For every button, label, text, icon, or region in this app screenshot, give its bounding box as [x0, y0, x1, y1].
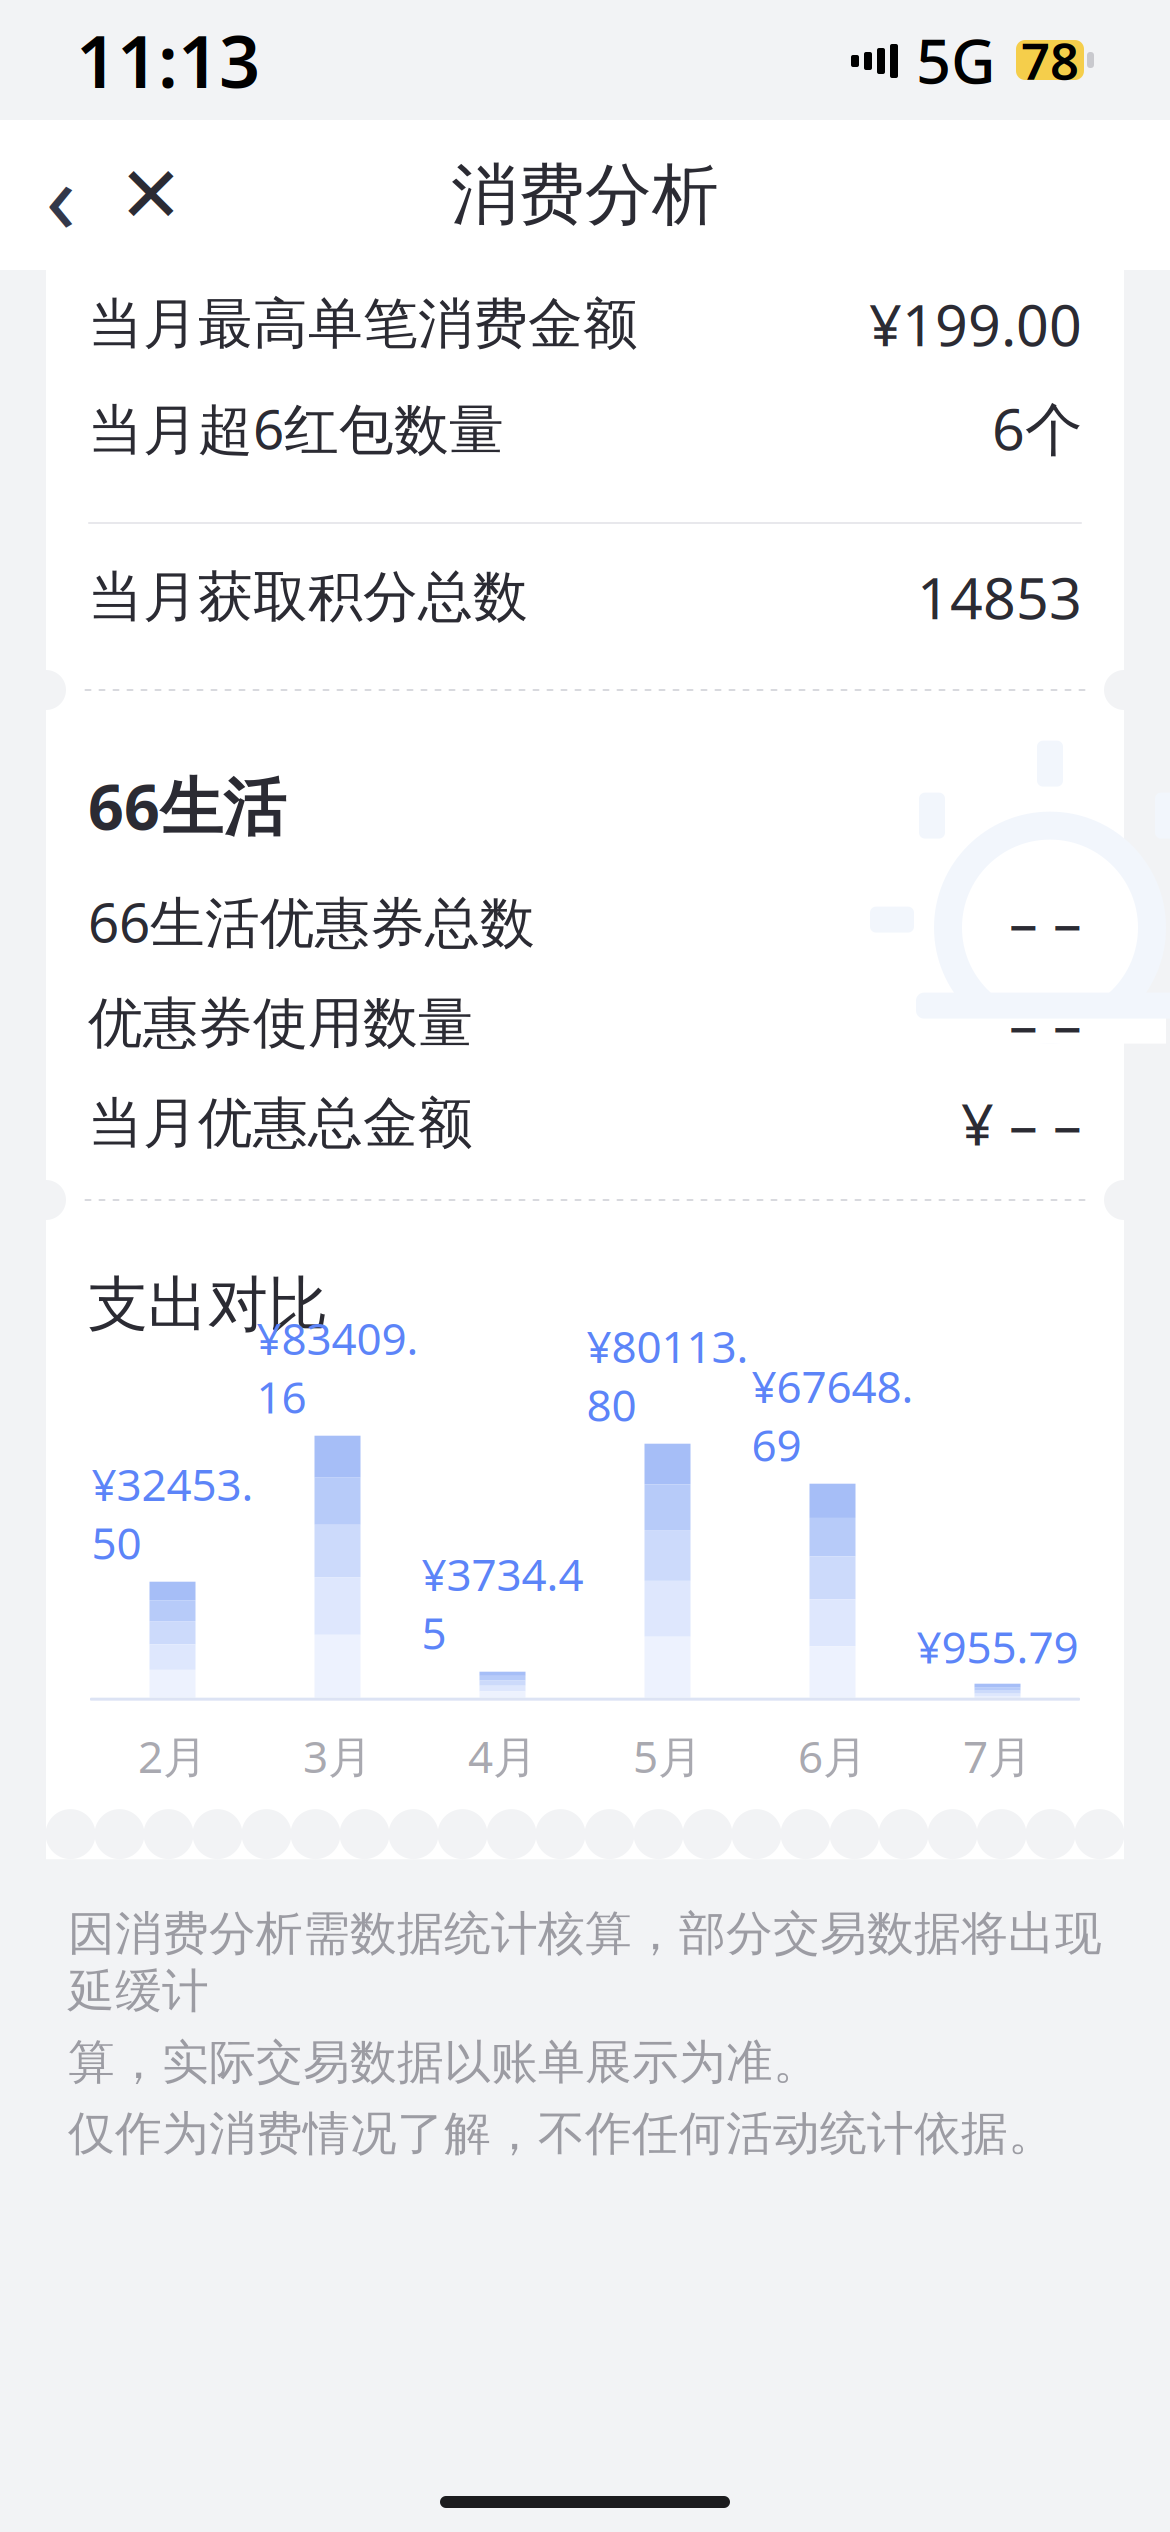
staticText: 算，实际交易数据以账单展示为准。 — [68, 2034, 820, 2091]
staticText: ¥67648.69 — [751, 1357, 913, 1474]
staticText: ¥32453.50 — [91, 1455, 253, 1572]
staticText: 仅作为消费情况了解，不作任何活动统计依据。 — [68, 2105, 1055, 2162]
staticText: 消费分析 — [451, 154, 719, 236]
staticText: – – — [1009, 883, 1082, 959]
staticText: 当月优惠总金额 — [88, 1090, 473, 1157]
staticText: 优惠券使用数量 — [88, 990, 473, 1057]
staticText: 2月 — [138, 1727, 207, 1785]
staticText: 当月最高单笔消费金额 — [88, 290, 638, 357]
staticText: 当月超6红包数量 — [88, 392, 504, 464]
staticText: ¥ – – — [961, 1085, 1082, 1161]
staticText: 6个 — [992, 390, 1082, 466]
staticText: ¥955.79 — [916, 1617, 1078, 1676]
button[interactable]: 关闭 — [106, 140, 196, 250]
staticText: 支出对比 — [88, 1268, 328, 1342]
staticText: ¥80113.80 — [586, 1317, 748, 1434]
staticText: 5月 — [633, 1727, 702, 1785]
button[interactable]: 返回 — [16, 140, 106, 250]
staticText: 因消费分析需数据统计核算，部分交易数据将出现延缓计 — [68, 1905, 1102, 2020]
staticText: 66生活 — [88, 764, 286, 847]
staticText: 当月获取积分总数 — [88, 563, 528, 630]
staticText: ¥83409.16 — [256, 1309, 418, 1426]
staticText: 66生活优惠券总数 — [88, 885, 535, 957]
staticText: 3月 — [303, 1727, 372, 1785]
staticText: 6月 — [798, 1727, 867, 1785]
staticText: ¥3734.45 — [421, 1545, 583, 1662]
staticText: 4月 — [468, 1727, 537, 1785]
staticText: 14853 — [917, 559, 1082, 635]
staticText: ✕ — [118, 151, 183, 239]
staticText: ¥199.00 — [869, 286, 1082, 362]
staticText: 78 — [1021, 26, 1079, 94]
staticText: 7月 — [963, 1727, 1032, 1785]
staticText: 5G — [916, 19, 996, 101]
staticText: ‹ — [45, 129, 76, 260]
staticText: 11:13 — [76, 12, 260, 108]
staticText: – – — [1009, 985, 1082, 1061]
